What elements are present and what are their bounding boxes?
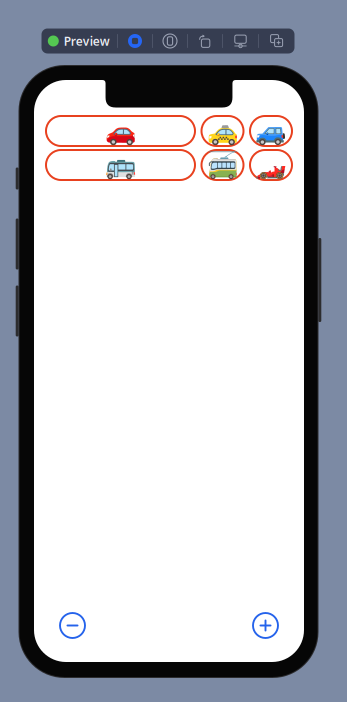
button[interactable]: Stop preview	[118, 28, 152, 53]
staticText: 🚌	[104, 150, 136, 179]
button[interactable]: 🚌	[46, 150, 195, 180]
staticText: Preview	[64, 33, 110, 49]
button[interactable]: Rotate device	[188, 28, 222, 53]
button[interactable]: Live preview	[153, 28, 187, 53]
button[interactable]: 🚕	[201, 116, 243, 146]
button[interactable]: 🚙	[250, 116, 292, 146]
staticText: 🚙	[255, 116, 287, 145]
button[interactable]: 🏎️	[250, 150, 292, 180]
staticText: 🚗	[104, 116, 136, 145]
staticText: 🚕	[206, 116, 238, 145]
button[interactable]: Display options	[223, 28, 258, 53]
button[interactable]: 🚎	[201, 150, 243, 180]
button[interactable]: 🚗	[46, 116, 195, 146]
button[interactable]: Preview	[41, 28, 117, 53]
button[interactable]: Add	[253, 613, 278, 638]
button[interactable]: Add preview	[259, 28, 295, 53]
staticText: 🏎️	[255, 150, 287, 179]
button[interactable]: Remove	[60, 613, 85, 638]
staticText: 🚎	[206, 150, 238, 179]
